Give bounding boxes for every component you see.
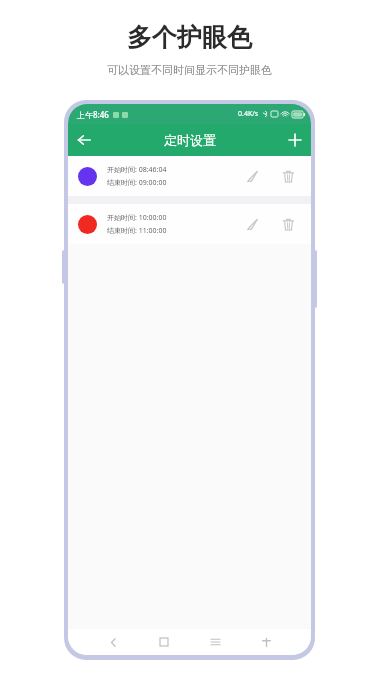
button[interactable]: Back [68,124,100,156]
staticText: 0.4K/s [238,109,259,119]
button[interactable]: Delete [275,163,301,189]
button[interactable]: Edit [239,211,265,237]
staticText: 上午8:46 [77,109,109,120]
staticText: 多个护眼色 [127,22,252,53]
staticText: 结束时间: 09:00:00 [107,178,167,188]
button[interactable]: 开始时间: 10:00:00 [68,204,311,244]
button[interactable]: Back [102,631,124,653]
button[interactable]: Home [153,631,175,653]
button[interactable]: Recent apps [204,631,226,653]
button[interactable]: Edit [239,163,265,189]
button[interactable]: Add [279,124,311,156]
button[interactable]: Delete [275,211,301,237]
staticText: 开始时间: 10:00:00 [107,213,167,223]
staticText: 可以设置不同时间显示不同护眼色 [107,63,272,77]
staticText: 开始时间: 08:46:04 [107,165,167,175]
staticText: 结束时间: 11:00:00 [107,226,167,236]
button[interactable]: 开始时间: 08:46:04 [68,156,311,196]
button[interactable]: Assistant [255,631,277,653]
staticText: 定时设置 [164,132,216,148]
